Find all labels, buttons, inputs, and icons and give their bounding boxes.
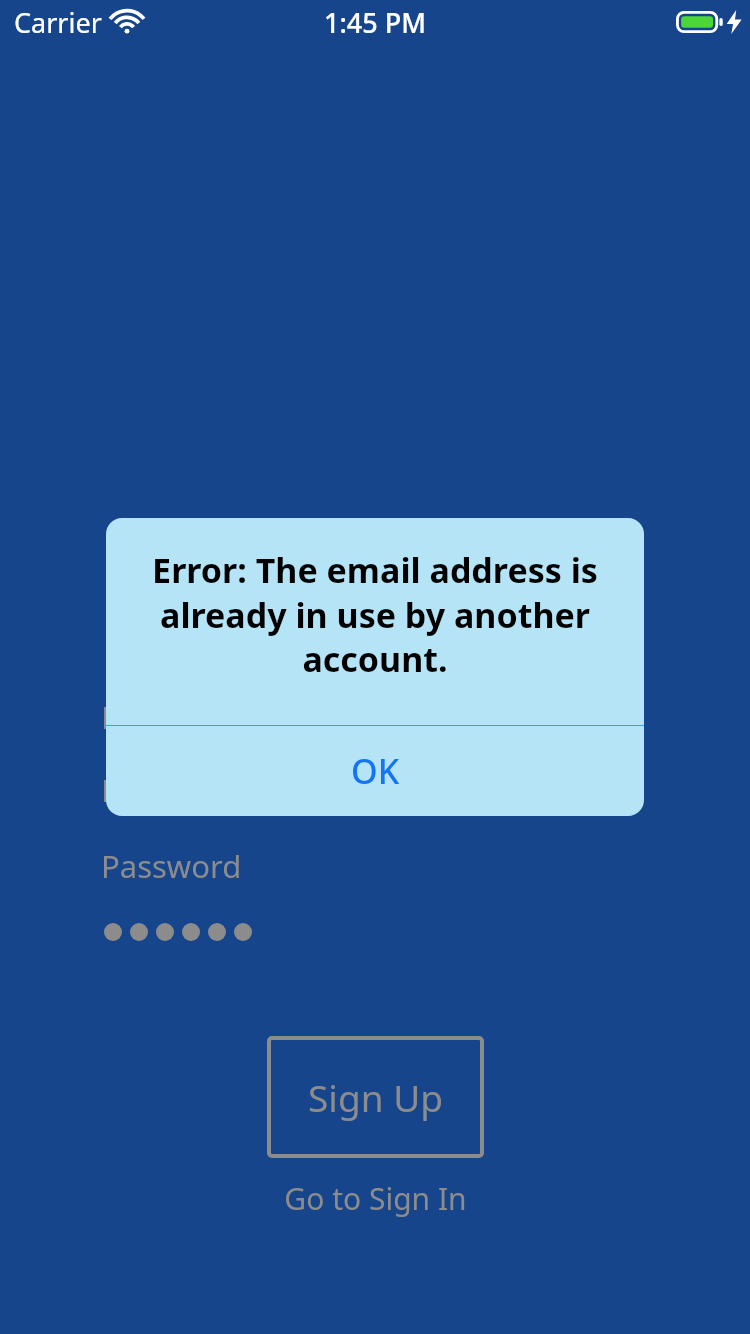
staticText: Sign Up <box>308 1072 443 1122</box>
staticText: Name <box>101 696 189 738</box>
staticText: OK <box>351 748 400 794</box>
staticText: 1:45 PM <box>324 4 426 41</box>
button[interactable]: Go to Sign In <box>275 1176 475 1220</box>
staticText: Password <box>101 845 242 887</box>
staticText: Carrier <box>14 4 102 41</box>
staticText: Email <box>101 769 181 811</box>
staticText: Go to Sign In <box>284 1178 467 1219</box>
staticText: Error: The email address is already in u… <box>126 547 624 681</box>
button[interactable]: Sign Up <box>267 1036 484 1158</box>
button[interactable]: OK <box>106 726 644 816</box>
